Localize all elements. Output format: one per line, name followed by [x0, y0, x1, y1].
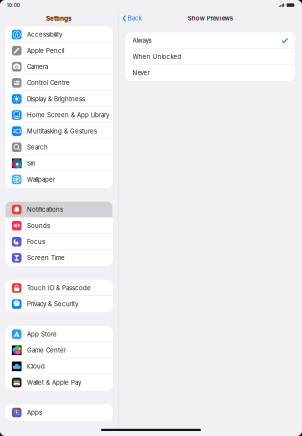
- staticText: Display & Brightness: [27, 95, 85, 103]
- staticText: Notifications: [27, 206, 63, 213]
- staticText: Home Screen & App Library: [27, 111, 109, 119]
- button[interactable]: Notifications: [5, 201, 112, 218]
- button[interactable]: Multitasking & Gestures: [5, 123, 112, 139]
- button[interactable]: Screen Time: [5, 250, 112, 266]
- button[interactable]: Game Center: [5, 342, 112, 358]
- button[interactable]: Focus: [5, 234, 112, 250]
- button[interactable]: Privacy & Security: [5, 296, 112, 312]
- button[interactable]: Siri: [5, 155, 112, 171]
- staticText: Apple Pencil: [27, 47, 64, 54]
- button[interactable]: Never: [126, 65, 295, 81]
- staticText: Never: [133, 69, 150, 76]
- staticText: Focus: [27, 238, 45, 245]
- button[interactable]: Home Screen & App Library: [5, 107, 112, 123]
- staticText: Search: [27, 143, 48, 151]
- staticText: Siri: [27, 160, 35, 167]
- staticText: When Unlocked: [133, 53, 182, 60]
- button[interactable]: Touch ID & Passcode: [5, 280, 112, 296]
- staticText: Wallpaper: [27, 176, 55, 183]
- button[interactable]: Back: [119, 10, 146, 26]
- button[interactable]: Control Centre: [5, 75, 112, 91]
- button[interactable]: Wallpaper: [5, 171, 112, 187]
- staticText: Touch ID & Passcode: [27, 284, 91, 292]
- button[interactable]: Apple Pencil: [5, 43, 112, 59]
- staticText: 10:00: [7, 2, 20, 8]
- staticText: Camera: [27, 63, 48, 70]
- staticText: iCloud: [27, 363, 45, 370]
- staticText: Sounds: [27, 222, 50, 229]
- staticText: Screen Time: [27, 254, 65, 261]
- staticText: Wallet & Apple Pay: [27, 379, 81, 386]
- button[interactable]: Sounds: [5, 218, 112, 234]
- button[interactable]: When Unlocked: [126, 49, 295, 65]
- staticText: Always: [133, 37, 152, 44]
- button[interactable]: Display & Brightness: [5, 91, 112, 107]
- staticText: Game Center: [27, 346, 66, 354]
- staticText: App Store: [27, 330, 57, 338]
- staticText: Settings: [46, 15, 72, 22]
- button[interactable]: Wallet & Apple Pay: [5, 374, 112, 390]
- button[interactable]: iCloud: [5, 358, 112, 374]
- button[interactable]: Search: [5, 139, 112, 155]
- button[interactable]: Accessibility: [5, 26, 112, 43]
- button[interactable]: App Store: [5, 326, 112, 342]
- staticText: Privacy & Security: [27, 300, 78, 308]
- staticText: Accessibility: [27, 31, 62, 38]
- button[interactable]: Camera: [5, 59, 112, 75]
- staticText: Multitasking & Gestures: [27, 127, 97, 135]
- button[interactable]: Always: [126, 32, 295, 49]
- button[interactable]: Apps: [5, 404, 112, 421]
- staticText: Control Centre: [27, 79, 70, 86]
- staticText: Show Previews: [188, 15, 233, 22]
- staticText: Apps: [27, 409, 42, 416]
- staticText: Back: [128, 15, 142, 22]
